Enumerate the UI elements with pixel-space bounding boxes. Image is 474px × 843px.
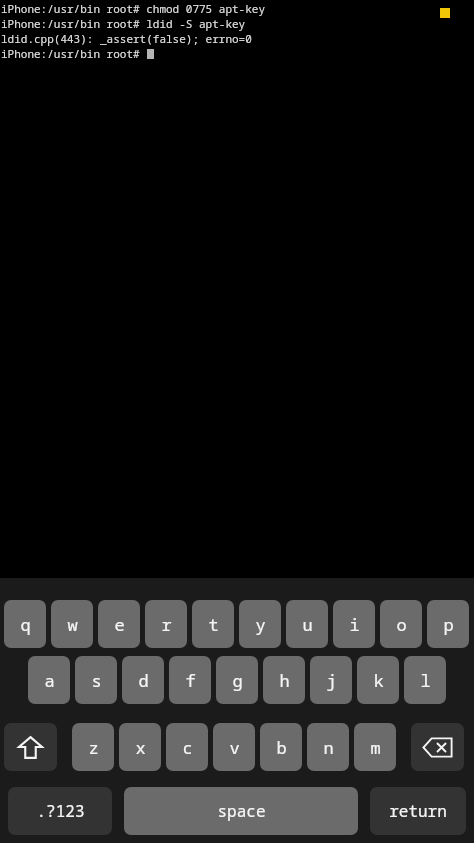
staticText: p [443,613,454,636]
button[interactable]: l [404,656,446,704]
staticText: iPhone:/usr/bin root# ldid -S apt-key [1,16,246,31]
button[interactable]: r [145,600,187,648]
staticText: i [349,613,360,636]
button[interactable]: u [286,600,328,648]
button[interactable]: e [98,600,140,648]
staticText: h [279,669,290,692]
button[interactable]: j [310,656,352,704]
button[interactable]: y [239,600,281,648]
staticText: c [182,736,193,759]
button[interactable]: z [72,723,114,771]
button[interactable]: k [357,656,399,704]
staticText: a [44,669,55,692]
staticText: .?123 [36,800,85,822]
staticText: s [91,669,102,692]
staticText: iPhone:/usr/bin root# [1,46,147,61]
button[interactable]: s [75,656,117,704]
staticText: return [389,800,447,822]
staticText: x [135,736,146,759]
button[interactable]: b [260,723,302,771]
button[interactable]: v [213,723,255,771]
button[interactable]: space [124,787,358,835]
staticText: b [276,736,287,759]
button[interactable]: i [333,600,375,648]
staticText: e [114,613,125,636]
button[interactable]: a [28,656,70,704]
staticText: o [396,613,407,636]
button[interactable]: p [427,600,469,648]
staticText: w [67,613,78,636]
staticText: r [161,613,172,636]
staticText: t [208,613,219,636]
button[interactable]: x [119,723,161,771]
staticText: z [88,736,99,759]
staticText: f [185,669,196,692]
button[interactable]: return [370,787,466,835]
button[interactable]: h [263,656,305,704]
button[interactable]: .?123 [8,787,112,835]
staticText: u [302,613,313,636]
button[interactable]: m [354,723,396,771]
button[interactable]: n [307,723,349,771]
button[interactable]: t [192,600,234,648]
button[interactable]: q [4,600,46,648]
staticText: n [323,736,334,759]
staticText: ldid.cpp(443): _assert(false); errno=0 [1,31,252,46]
button[interactable]: Backspace [411,723,464,771]
staticText: iPhone:/usr/bin root# chmod 0775 apt-key [1,1,265,16]
button[interactable]: g [216,656,258,704]
button[interactable]: Shift [4,723,57,771]
staticText: y [255,613,266,636]
staticText: l [420,669,431,692]
staticText: k [373,669,384,692]
staticText: j [326,669,337,692]
staticText: space [217,800,266,822]
staticText: d [138,669,149,692]
staticText: q [20,613,31,636]
staticText: g [232,669,243,692]
button[interactable]: c [166,723,208,771]
button[interactable]: d [122,656,164,704]
staticText: v [229,736,240,759]
staticText: m [370,736,381,759]
button[interactable]: w [51,600,93,648]
button[interactable]: f [169,656,211,704]
button[interactable]: o [380,600,422,648]
